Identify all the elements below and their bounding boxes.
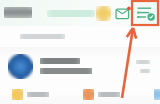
button[interactable]: Messages bbox=[115, 5, 132, 22]
button[interactable] bbox=[0, 26, 160, 47]
button[interactable] bbox=[47, 10, 95, 17]
button[interactable] bbox=[4, 7, 32, 18]
button[interactable]: Action one bbox=[12, 89, 49, 100]
button[interactable]: Action three bbox=[154, 89, 160, 100]
button[interactable] bbox=[8, 49, 160, 83]
button[interactable]: Tasks bbox=[134, 3, 156, 23]
button[interactable] bbox=[96, 6, 111, 21]
button[interactable]: Action two bbox=[83, 89, 120, 100]
